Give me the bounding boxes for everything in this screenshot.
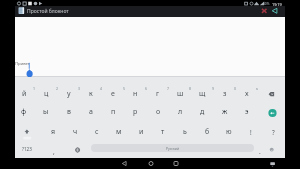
staticText: и	[139, 127, 144, 137]
staticText: 8	[189, 86, 192, 91]
staticText: д	[200, 107, 205, 117]
button[interactable]: Простой блокнот	[27, 5, 97, 18]
staticText: 4	[100, 86, 103, 91]
button[interactable]: к	[81, 85, 101, 103]
button[interactable]	[264, 141, 280, 158]
staticText: Русский	[166, 146, 179, 151]
button[interactable]: я	[43, 123, 63, 141]
staticText: ?	[272, 128, 275, 136]
button[interactable]: ц	[36, 85, 56, 103]
button[interactable]: и	[131, 123, 151, 141]
staticText: т	[161, 127, 165, 137]
button[interactable]: Русский	[91, 144, 254, 152]
staticText: 50%	[263, 2, 270, 6]
button[interactable]: н	[125, 85, 145, 103]
staticText: х	[245, 89, 249, 99]
button[interactable]: а	[81, 103, 101, 121]
button[interactable]: .	[253, 142, 267, 160]
staticText: й	[22, 89, 27, 99]
staticText: я	[51, 127, 56, 137]
staticText: п	[111, 107, 116, 117]
staticText: 6	[145, 86, 148, 91]
staticText: ж	[222, 107, 228, 117]
staticText: с	[95, 127, 99, 137]
button[interactable]: ы	[36, 103, 56, 121]
button[interactable]	[261, 85, 284, 102]
staticText: ,	[53, 147, 55, 156]
staticText: а	[89, 107, 93, 117]
button[interactable]: п	[103, 103, 123, 121]
button[interactable]	[15, 122, 32, 140]
staticText: н	[133, 89, 138, 99]
staticText: ч	[73, 127, 78, 137]
staticText: ф	[21, 107, 27, 117]
staticText: 9	[212, 86, 215, 91]
staticText: о	[156, 107, 161, 117]
staticText: ь	[183, 127, 187, 137]
staticText: м	[116, 127, 122, 137]
button[interactable]: т	[153, 123, 173, 141]
staticText: у	[67, 89, 71, 99]
button[interactable]: л	[170, 103, 190, 121]
staticText: ц	[44, 89, 49, 99]
button[interactable]: щ	[192, 85, 212, 103]
button[interactable]	[168, 158, 184, 169]
button[interactable]: с	[87, 123, 107, 141]
button[interactable]: у	[59, 85, 79, 103]
staticText: 7	[167, 86, 170, 91]
staticText: 2	[56, 86, 59, 91]
button[interactable]: ж	[215, 103, 235, 121]
staticText: к	[89, 89, 93, 99]
button[interactable]: ь	[175, 123, 195, 141]
staticText: !	[250, 128, 252, 136]
button[interactable]: э	[237, 103, 257, 121]
staticText: л	[178, 107, 183, 117]
staticText: 3	[78, 86, 81, 91]
staticText: ъ	[256, 86, 259, 91]
button[interactable]: х	[237, 85, 257, 103]
button[interactable]: ф	[14, 103, 34, 121]
staticText: г	[156, 89, 160, 99]
button[interactable]: е	[103, 85, 123, 103]
button[interactable]: ч	[65, 123, 85, 141]
button[interactable]: м	[109, 123, 129, 141]
button[interactable]	[116, 158, 132, 169]
staticText: 0	[234, 86, 237, 91]
staticText: р	[133, 107, 138, 117]
button[interactable]: г	[148, 85, 168, 103]
button[interactable]: д	[192, 103, 212, 121]
button[interactable]: !	[243, 123, 259, 141]
button[interactable]: ш	[170, 85, 190, 103]
staticText: ш	[177, 89, 184, 99]
staticText: .	[259, 147, 261, 156]
staticText: щ	[199, 89, 206, 99]
button[interactable]: р	[125, 103, 145, 121]
button[interactable]: в	[59, 103, 79, 121]
button[interactable]	[143, 158, 159, 169]
staticText: Привет	[15, 61, 30, 67]
staticText: э	[245, 107, 249, 117]
staticText: в	[67, 107, 71, 117]
button[interactable]: ?123	[16, 140, 38, 158]
button[interactable]	[69, 141, 86, 158]
staticText: 1	[33, 86, 36, 91]
button[interactable]: ,	[47, 142, 61, 160]
button[interactable]: з	[215, 85, 235, 103]
button[interactable]: й	[14, 85, 34, 103]
staticText: Простой блокнот	[27, 8, 69, 15]
staticText: б	[205, 127, 210, 137]
staticText: ю	[226, 127, 232, 137]
button[interactable]: о	[148, 103, 168, 121]
staticText: 5	[123, 86, 126, 91]
staticText: ы	[43, 107, 49, 117]
staticText: е	[111, 89, 115, 99]
button[interactable]	[262, 103, 283, 121]
button[interactable]: ю	[219, 123, 239, 141]
staticText: 19:19	[272, 2, 282, 7]
button[interactable]	[15, 17, 285, 76]
staticText: ?123	[22, 146, 32, 152]
button[interactable]: ?	[265, 123, 281, 141]
button[interactable]: б	[197, 123, 217, 141]
staticText: з	[223, 89, 227, 99]
